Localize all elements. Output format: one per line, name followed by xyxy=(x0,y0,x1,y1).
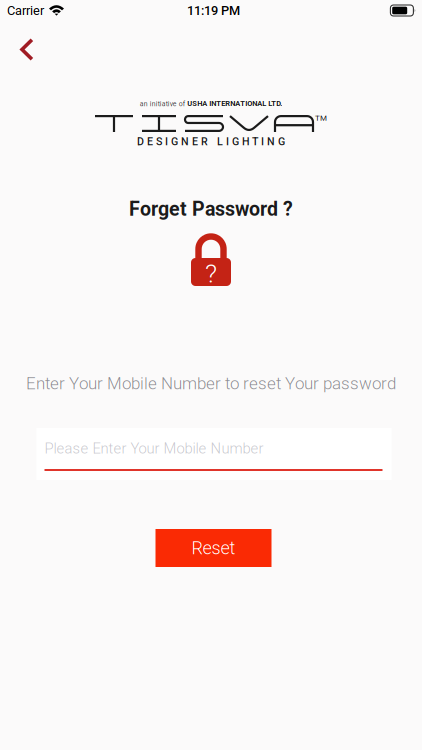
staticText: D E S I G N E R L I G H T I N G xyxy=(137,135,285,148)
button[interactable]: Reset xyxy=(155,529,271,567)
staticText: Enter Your Mobile Number to reset Your p… xyxy=(26,374,396,393)
button[interactable]: Back xyxy=(0,29,54,70)
staticText: Reset xyxy=(191,537,235,559)
staticText: an initiative of xyxy=(140,100,185,108)
staticText: Carrier xyxy=(7,3,44,18)
staticText: ? xyxy=(205,258,217,289)
staticText: Please Enter Your Mobile Number xyxy=(44,440,263,457)
staticText: USHA INTERNATIONAL LTD. xyxy=(187,99,282,108)
staticText: Forget Password ? xyxy=(129,197,293,220)
staticText: TM xyxy=(315,113,327,123)
staticText: 11:19 PM xyxy=(187,3,240,18)
